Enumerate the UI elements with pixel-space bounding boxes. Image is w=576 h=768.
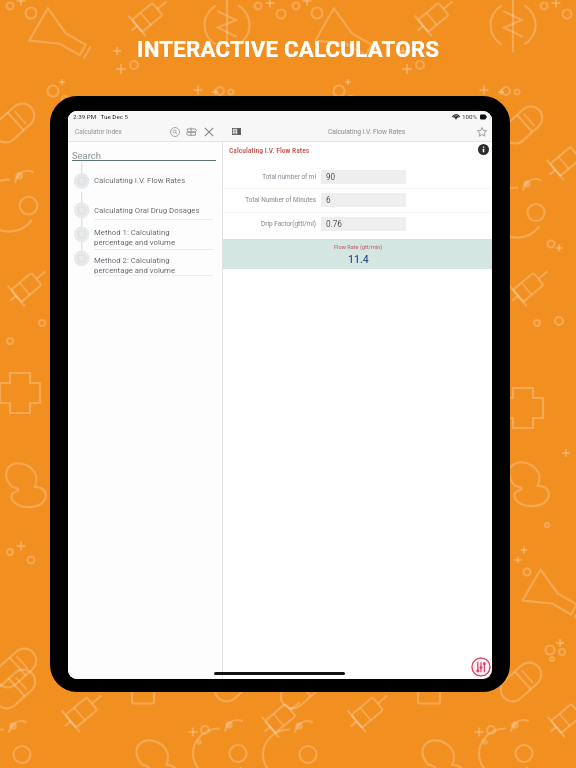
staticText: Calculator Index [75,128,122,136]
staticText: 11.4 [348,253,369,265]
staticText: 2:39 PM Tue Dec 5 [73,113,128,120]
button[interactable]: Calculating I.V. Flow Rates [94,176,219,197]
staticText: 6 [326,195,331,205]
button[interactable]: 6 [321,193,406,207]
staticText: Total number of ml [262,173,316,181]
staticText: 0.76 [326,219,342,229]
button[interactable]: 90 [321,170,406,184]
staticText: 90 [326,172,336,182]
staticText: 100% [462,113,478,120]
button[interactable]: Sort [185,125,198,138]
staticText: Calculating Oral Drug Dosages [94,206,200,215]
staticText: Total Number of Minutes [245,196,316,204]
staticText: Drip Factor(gttI/ml) [261,220,316,228]
button[interactable]: Search [168,125,181,138]
staticText: INTERACTIVE CALCULATORS [137,36,440,62]
button[interactable]: Favourite [475,125,488,138]
button[interactable]: Info [477,143,489,155]
button[interactable]: Method 2: Calculating percentage and vol… [94,256,219,277]
staticText: Calculating I.V. Flow Rates [94,176,186,185]
button[interactable]: Toggle sidebar [230,125,243,138]
staticText: Search [72,150,101,161]
button[interactable]: Close [202,125,215,138]
staticText: Flow Rate (gtt/min) [334,244,383,251]
button[interactable]: Calculator settings [471,657,491,677]
staticText: Calculating I.V. Flow Rates [229,146,310,155]
staticText: Calculating I.V. Flow Rates [328,128,406,136]
button[interactable]: Calculating Oral Drug Dosages [94,206,219,227]
staticText: Method 2: Calculating percentage and vol… [94,256,176,275]
staticText: Method 1: Calculating percentage and vol… [94,228,176,247]
button[interactable]: 0.76 [321,217,406,231]
button[interactable]: Method 1: Calculating percentage and vol… [94,228,219,249]
